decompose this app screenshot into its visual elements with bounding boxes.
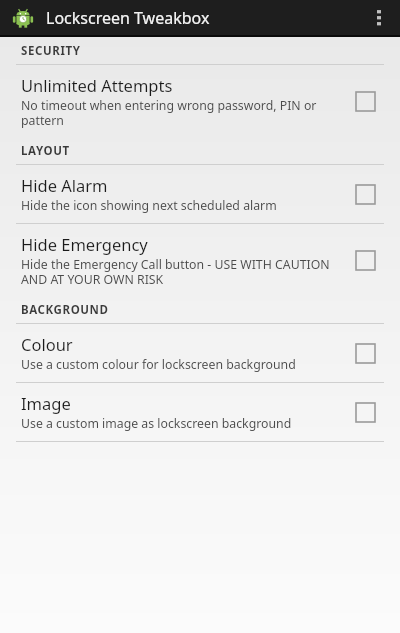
staticText: Hide the Emergency Call button - USE WIT… [21,256,334,287]
staticText: Hide the icon showing next scheduled ala… [21,197,277,214]
button[interactable]: Unlimited Attempts [0,65,400,137]
staticText: Unlimited Attempts [21,74,173,96]
staticText: BACKGROUND [21,302,109,318]
button[interactable]: Unlimited Attempts checkbox [346,82,384,120]
button[interactable]: Hide Emergency checkbox [346,241,384,279]
staticText: Colour [21,333,73,355]
button[interactable]: Hide Alarm checkbox [346,175,384,213]
staticText: Lockscreen Tweakbox [46,7,210,29]
staticText: Use a custom colour for lockscreen backg… [21,356,296,373]
button[interactable]: Image [0,383,400,441]
staticText: Image [21,392,71,414]
button[interactable]: Hide Alarm [0,165,400,223]
button[interactable]: App icon [10,5,36,31]
button[interactable]: Hide Emergency [0,224,400,296]
staticText: No timeout when entering wrong password,… [21,97,334,128]
button[interactable]: More options [362,0,396,35]
button[interactable]: Colour checkbox [346,334,384,372]
staticText: Hide Alarm [21,174,108,196]
button[interactable]: Image checkbox [346,393,384,431]
staticText: Use a custom image as lockscreen backgro… [21,415,292,432]
staticText: LAYOUT [21,143,70,159]
staticText: SECURITY [21,43,81,59]
button[interactable]: Colour [0,324,400,382]
staticText: Hide Emergency [21,233,148,255]
